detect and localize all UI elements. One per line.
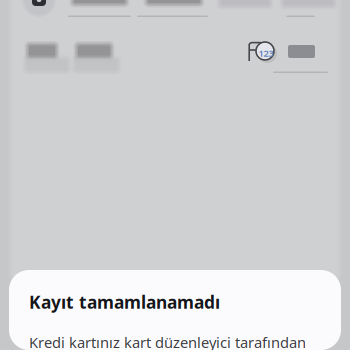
button[interactable]: Kart sağlayıcı: [0, 0, 58, 18]
button[interactable]: Güvenlik kodu: [0, 0, 208, 18]
button[interactable]: Kart alanı: [0, 0, 333, 18]
button[interactable]: Son kullanma tarihi: [0, 0, 131, 18]
staticText: Kayıt tamamlanamadı: [29, 290, 220, 313]
button[interactable]: Sayısal klavye: [0, 0, 330, 74]
staticText: Kredi kartınız kart düzenleyici tarafınd…: [29, 332, 306, 350]
staticText: 123: [258, 47, 273, 59]
